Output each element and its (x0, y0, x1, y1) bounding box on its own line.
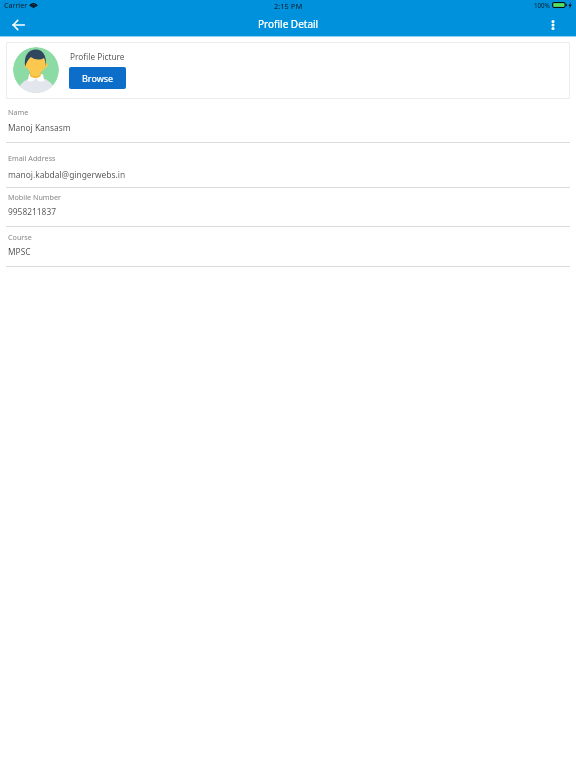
staticText: 100% (534, 1, 550, 9)
button[interactable]: Course (0, 227, 576, 267)
staticText: Carrier (4, 1, 28, 11)
staticText: Email Address (8, 153, 56, 163)
button[interactable]: Browse (69, 67, 126, 89)
staticText: Mobile Number (8, 192, 61, 202)
staticText: manoj.kabdal@gingerwebs.in (8, 169, 126, 180)
staticText: Profile Picture (70, 51, 125, 62)
staticText: Browse (82, 72, 114, 84)
staticText: Course (8, 232, 32, 242)
staticText: Profile Detail (258, 17, 319, 31)
staticText: Name (8, 107, 29, 117)
button[interactable]: Back (4, 15, 32, 35)
staticText: 9958211837 (8, 206, 56, 217)
button[interactable]: More options (544, 16, 562, 36)
button[interactable]: Email Address (0, 143, 576, 188)
button[interactable]: Name (0, 99, 576, 143)
staticText: Manoj Kansasm (8, 122, 71, 133)
button[interactable]: Mobile Number (0, 188, 576, 227)
staticText: 2:15 PM (274, 1, 303, 11)
staticText: MPSC (8, 246, 31, 257)
